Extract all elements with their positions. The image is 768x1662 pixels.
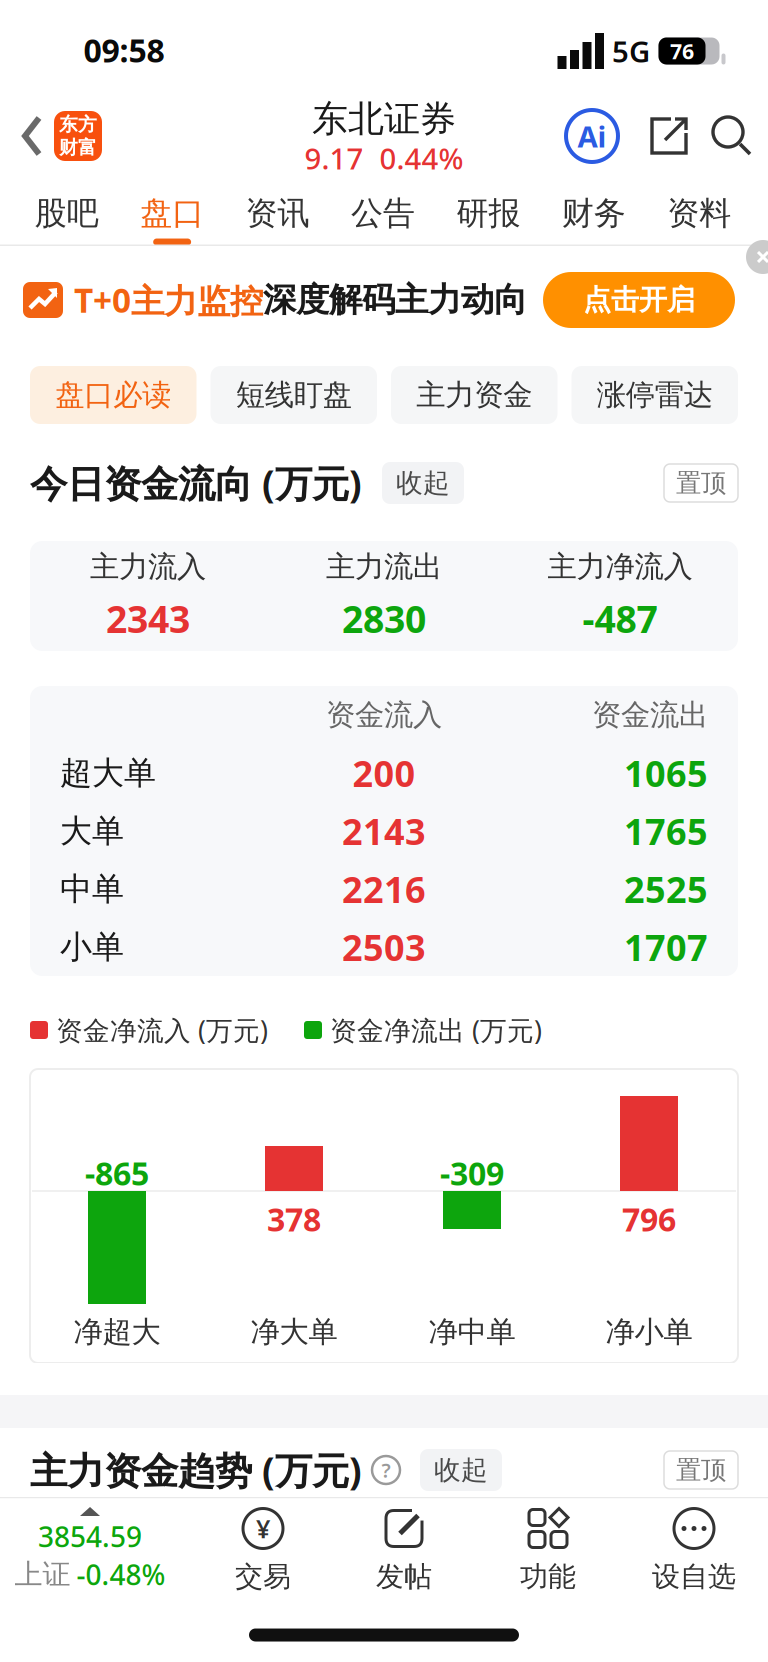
staticText: 设自选 (652, 1559, 736, 1594)
staticText: 研报 (456, 194, 520, 233)
button[interactable]: 置顶 (664, 1451, 738, 1489)
button[interactable]: 资料 (647, 182, 752, 246)
staticText: 财务 (562, 194, 626, 233)
button[interactable]: 3854.59 (0, 1498, 194, 1612)
staticText: 今日资金流向 (万元) (30, 458, 362, 508)
staticText: 上证 (14, 1557, 70, 1592)
button[interactable]: 功能 (476, 1498, 620, 1612)
staticText: 76 (670, 37, 694, 65)
staticText: 9.17 (304, 138, 363, 177)
button[interactable]: 主力资金 (391, 366, 557, 424)
staticText: -309 (440, 1152, 504, 1194)
staticText: 涨停雷达 (597, 377, 713, 413)
staticText: 资金净流出 (万元) (330, 1012, 542, 1048)
staticText: 主力资金 (416, 377, 532, 413)
staticText: 超大单 (60, 753, 156, 793)
staticText: T+0主力监控 (74, 278, 263, 322)
staticText: 主力净流入 (547, 549, 692, 585)
staticText: 点击开启 (583, 283, 695, 317)
staticText: 5G (612, 31, 650, 70)
button[interactable]: ¥ (194, 1498, 332, 1612)
staticText: 3854.59 (38, 1518, 142, 1555)
staticText: -487 (582, 594, 657, 643)
staticText: 资金流入 (326, 697, 442, 733)
staticText: 资讯 (246, 194, 310, 233)
staticText: 资金净流入 (万元) (56, 1012, 268, 1048)
button[interactable]: 收起 (420, 1449, 502, 1491)
staticText: 置顶 (676, 1454, 726, 1485)
button[interactable] (647, 116, 687, 156)
button[interactable]: 盘口必读 (30, 366, 196, 424)
staticText: 收起 (396, 467, 450, 499)
staticText: 财富 (59, 136, 97, 159)
staticText: 东方 (59, 113, 97, 136)
button[interactable] (8, 116, 46, 156)
button[interactable]: 置顶 (664, 464, 738, 502)
staticText: Ai (577, 116, 606, 155)
staticText: 盘口 (140, 194, 204, 233)
staticText: 收起 (434, 1454, 488, 1486)
staticText: 1065 (624, 749, 708, 797)
button[interactable]: 点击开启 (543, 272, 735, 328)
button[interactable]: 发帖 (332, 1498, 476, 1612)
staticText: 大单 (60, 811, 124, 851)
staticText: 09:58 (83, 29, 164, 71)
staticText: 资料 (667, 194, 731, 233)
staticText: 深度解码主力动向 (263, 279, 527, 320)
staticText: 中单 (60, 869, 124, 909)
staticText: 净大单 (250, 1314, 337, 1350)
staticText: 2216 (342, 865, 426, 913)
staticText: 378 (267, 1198, 321, 1240)
staticText: 功能 (520, 1559, 576, 1594)
button[interactable]: 股吧 (14, 182, 119, 246)
staticText: 796 (622, 1198, 676, 1240)
staticText: -865 (85, 1152, 149, 1194)
button[interactable]: 盘口 (119, 182, 225, 246)
button[interactable]: 财务 (541, 182, 646, 246)
button[interactable]: Ai (564, 108, 620, 164)
staticText: ? (381, 1457, 390, 1483)
staticText: 2525 (624, 865, 708, 913)
staticText: 公告 (351, 194, 415, 233)
staticText: 小单 (60, 927, 124, 967)
staticText: 股吧 (35, 194, 99, 233)
staticText: 2343 (106, 594, 190, 643)
staticText: 200 (352, 749, 415, 797)
staticText: 1707 (624, 923, 708, 971)
staticText: 东北证券 (312, 97, 456, 141)
staticText: 交易 (235, 1559, 291, 1594)
staticText: 置顶 (676, 467, 726, 498)
button[interactable] (711, 115, 753, 157)
staticText: 2503 (342, 923, 426, 971)
staticText: 净小单 (605, 1314, 692, 1350)
staticText: 1765 (624, 807, 708, 855)
staticText: -0.48% (76, 1556, 165, 1593)
staticText: 资金流出 (592, 697, 708, 733)
button[interactable]: 公告 (330, 182, 436, 246)
staticText: 净中单 (428, 1314, 515, 1350)
staticText: 0.44% (379, 138, 463, 177)
button[interactable]: 短线盯盘 (210, 366, 377, 424)
staticText: 2143 (342, 807, 426, 855)
button[interactable]: 设自选 (620, 1498, 768, 1612)
staticText: ¥ (256, 1512, 270, 1545)
button[interactable]: 研报 (436, 182, 541, 246)
staticText: 主力流入 (90, 549, 206, 585)
button[interactable]: 收起 (382, 462, 464, 504)
button[interactable] (734, 246, 768, 280)
staticText: 发帖 (376, 1559, 432, 1594)
staticText: 短线盯盘 (236, 377, 352, 413)
button[interactable]: 东方 (54, 111, 102, 161)
staticText: 主力资金趋势 (万元) (30, 1445, 362, 1495)
staticText: 净超大 (73, 1314, 160, 1350)
staticText: 2830 (342, 594, 426, 643)
button[interactable]: 资讯 (225, 182, 330, 246)
staticText: 盘口必读 (55, 377, 171, 413)
staticText: 主力流出 (326, 549, 442, 585)
button[interactable]: 涨停雷达 (571, 366, 738, 424)
